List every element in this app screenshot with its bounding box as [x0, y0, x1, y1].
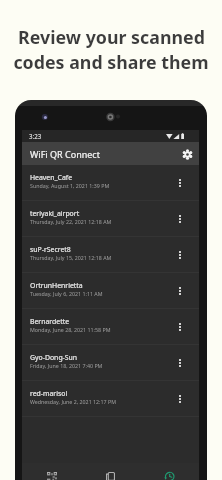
- button[interactable]: More options: [170, 389, 190, 409]
- button[interactable]: More options: [170, 317, 190, 337]
- button[interactable]: suP-rSecret8: [22, 237, 199, 273]
- staticText: Gyo-Dong-Sun: [30, 353, 78, 362]
- button[interactable]: Settings: [177, 144, 197, 164]
- button[interactable]: More options: [170, 245, 190, 265]
- button[interactable]: More options: [170, 281, 190, 301]
- staticText: teriyaki_airport: [30, 209, 80, 218]
- button[interactable]: Scan: [22, 463, 81, 480]
- button[interactable]: teriyaki_airport: [22, 201, 199, 237]
- staticText: codes and share them: [13, 50, 209, 74]
- button[interactable]: Heaven_Cafe: [22, 165, 199, 201]
- staticText: Monday, June 28, 2021 11:58 PM: [30, 326, 111, 333]
- button[interactable]: More options: [170, 173, 190, 193]
- staticText: WiFi QR Connect: [30, 148, 100, 160]
- staticText: Heaven_Cafe: [30, 173, 73, 182]
- staticText: Thursday, July 15, 2021 12:18 AM: [30, 254, 112, 261]
- button[interactable]: More options: [170, 209, 190, 229]
- button[interactable]: OrtrunHenrietta: [22, 273, 199, 309]
- button[interactable]: red-marisol: [22, 381, 199, 417]
- staticText: Wednesday, June 2, 2021 12:17 PM: [30, 398, 116, 405]
- button[interactable]: Saved codes: [81, 463, 140, 480]
- staticText: Sunday, August 1, 2021 1:39 PM: [30, 182, 110, 189]
- button[interactable]: History: [140, 463, 199, 480]
- button[interactable]: Gyo-Dong-Sun: [22, 345, 199, 381]
- staticText: suP-rSecret8: [30, 245, 71, 254]
- staticText: Tuesday, July 6, 2021 1:11 AM: [30, 290, 103, 297]
- staticText: OrtrunHenrietta: [30, 281, 83, 290]
- staticText: Bernardette: [30, 317, 70, 326]
- staticText: Friday, June 18, 2021 7:40 PM: [30, 362, 103, 369]
- staticText: Review your scanned: [18, 25, 205, 49]
- button[interactable]: More options: [170, 353, 190, 373]
- staticText: red-marisol: [30, 389, 68, 398]
- button[interactable]: Bernardette: [22, 309, 199, 345]
- staticText: 3:23: [29, 132, 42, 140]
- staticText: Thursday, July 22, 2021 12:18 AM: [30, 218, 112, 225]
